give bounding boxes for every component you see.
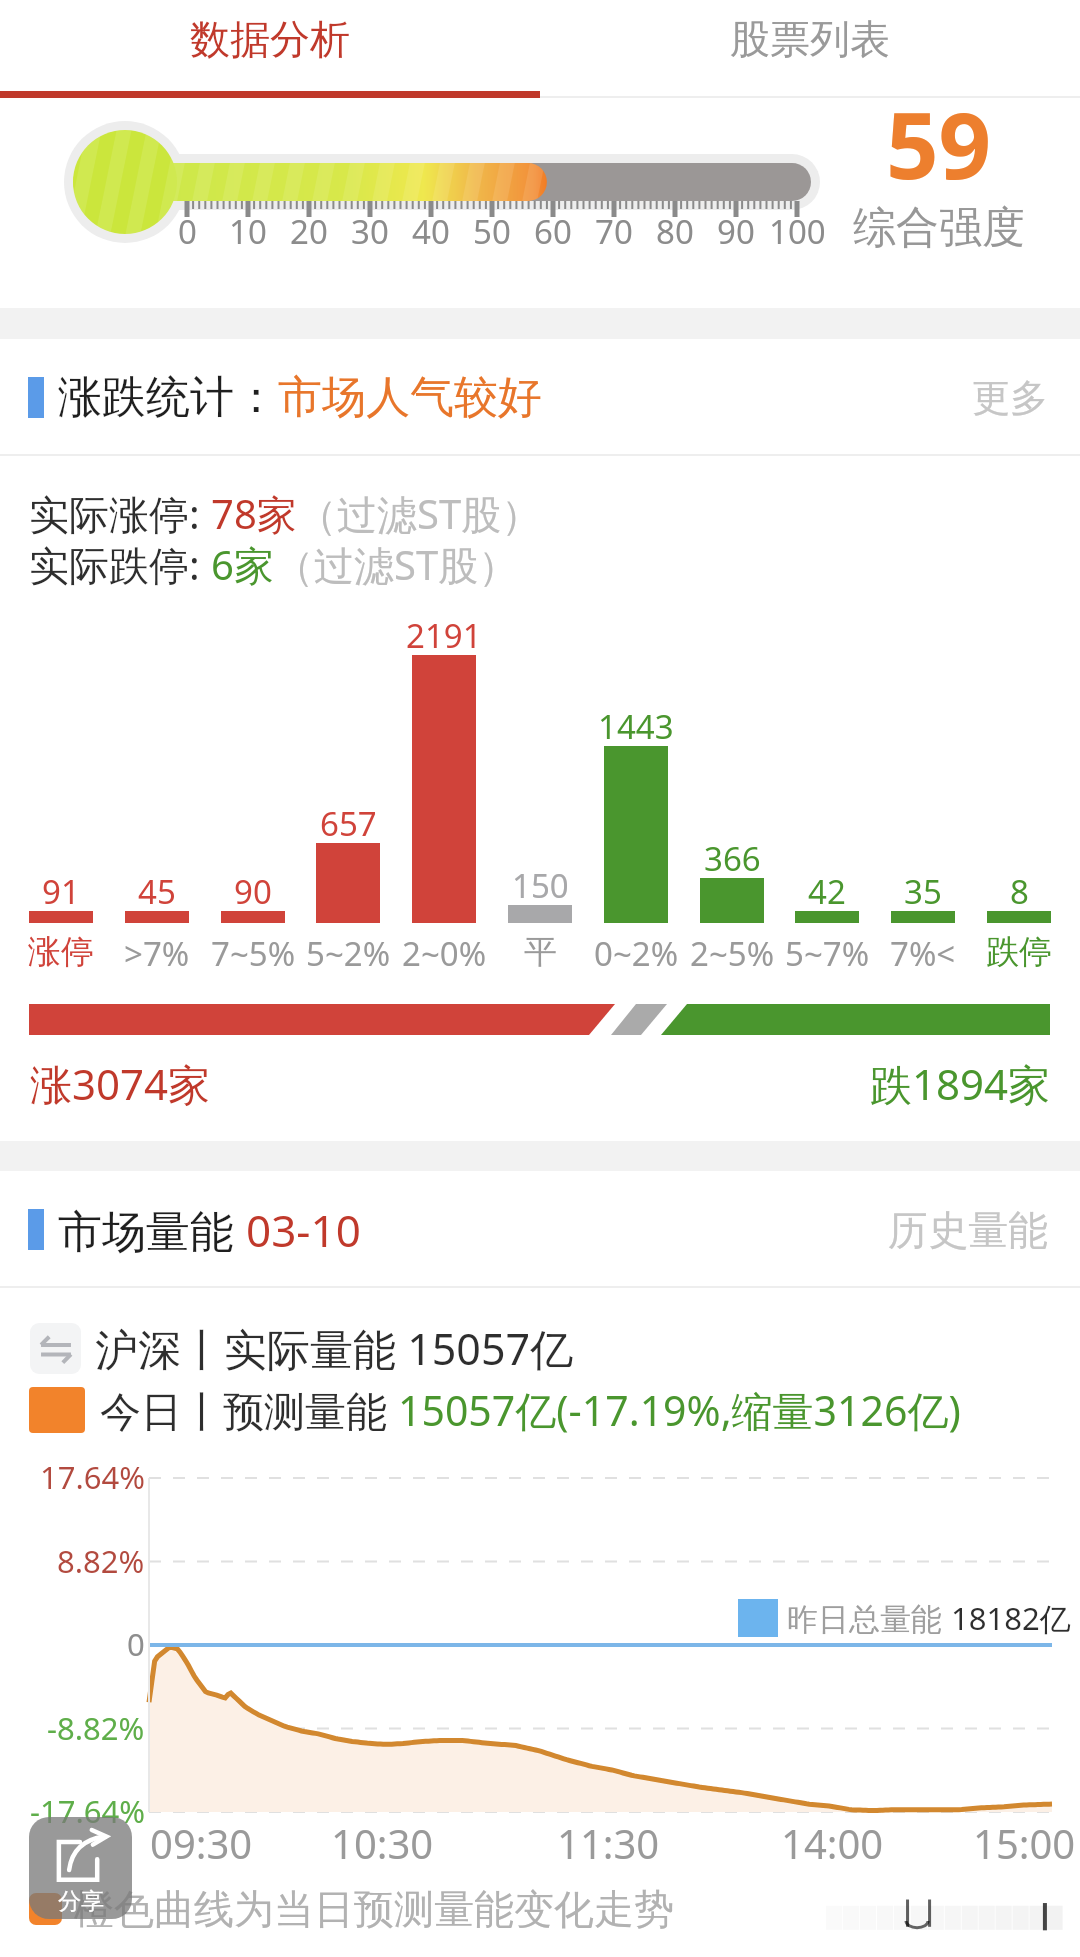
staticText: 2~5% <box>690 931 775 976</box>
staticText: 更多 <box>972 374 1048 422</box>
staticText: 5~7% <box>785 931 870 976</box>
staticText: （过滤ST股） <box>297 486 542 541</box>
staticText: 15057亿(-17.19%,缩量3126亿) <box>398 1382 961 1438</box>
staticText: 平 <box>524 931 557 973</box>
staticText: 实际涨停: <box>29 486 211 541</box>
staticText: 50 <box>473 209 511 254</box>
staticText: （过滤ST股） <box>274 537 519 592</box>
staticText: 历史量能 <box>888 1205 1048 1255</box>
staticText: 78家 <box>211 486 297 541</box>
staticText: 跌停 <box>986 931 1052 973</box>
staticText: 综合强度 <box>853 201 1025 255</box>
staticText: 10:30 <box>331 1816 434 1870</box>
staticText: 09:30 <box>150 1816 253 1870</box>
staticText: 0~2% <box>594 931 679 976</box>
button[interactable]: 分享 <box>29 1817 132 1919</box>
staticText: 7%< <box>890 931 956 976</box>
staticText: 今日丨预测量能 <box>100 1382 398 1438</box>
staticText: 6家 <box>211 537 274 592</box>
staticText: 70 <box>595 209 633 254</box>
staticText: 8 <box>1010 869 1029 914</box>
staticText: 沪深丨实际量能 15057亿 <box>95 1319 574 1378</box>
staticText: 30 <box>351 209 389 254</box>
staticText: 90 <box>234 869 272 914</box>
staticText: 5~2% <box>306 931 391 976</box>
staticText: 59 <box>886 81 992 206</box>
button[interactable]: 数据分析 <box>0 0 540 77</box>
staticText: -8.82% <box>47 1707 145 1749</box>
staticText: 1443 <box>598 704 674 749</box>
staticText: 150 <box>512 863 569 908</box>
staticText: 0 <box>127 1623 145 1665</box>
staticText: 市场量能 <box>58 1200 246 1260</box>
staticText: 2~0% <box>402 931 487 976</box>
staticText: >7% <box>124 931 190 976</box>
staticText: 366 <box>704 836 761 881</box>
staticText: 股票列表 <box>730 14 890 64</box>
staticText: 昨日总量能 <box>787 1597 951 1639</box>
staticText: 15:00 <box>973 1816 1076 1870</box>
staticText: 657 <box>320 801 377 846</box>
staticText: 2191 <box>406 613 482 658</box>
staticText: 涨停 <box>28 931 94 973</box>
staticText: 17.64% <box>40 1456 145 1498</box>
staticText: -17.64% <box>30 1790 145 1832</box>
staticText: 跌1894家 <box>870 1055 1051 1112</box>
staticText: 14:00 <box>781 1816 884 1870</box>
staticText: 35 <box>904 869 942 914</box>
staticText: 实际跌停: <box>29 537 211 592</box>
staticText: 市场人气较好 <box>278 370 542 425</box>
staticText: 8.82% <box>57 1540 145 1582</box>
staticText: 20 <box>290 209 328 254</box>
staticText: 7~5% <box>211 931 296 976</box>
staticText: 涨3074家 <box>30 1055 211 1112</box>
staticText: 80 <box>656 209 694 254</box>
button[interactable]: 更多 <box>972 360 1048 436</box>
staticText: 10 <box>229 209 267 254</box>
staticText: 03-10 <box>246 1200 361 1260</box>
staticText: 0 <box>178 209 197 254</box>
staticText: 11:30 <box>557 1816 660 1870</box>
staticText: 45 <box>138 869 176 914</box>
button[interactable]: 股票列表 <box>540 0 1080 77</box>
button[interactable]: 历史量能 <box>888 1191 1048 1269</box>
staticText: 90 <box>717 209 755 254</box>
staticText: 涨跌统计： <box>58 370 278 425</box>
staticText: 60 <box>534 209 572 254</box>
staticText: 橙色曲线为当日预测量能变化走势 <box>74 1884 674 1934</box>
staticText: 91 <box>42 869 80 914</box>
staticText: 40 <box>412 209 450 254</box>
staticText: 分享 <box>58 1887 104 1916</box>
staticText: 18182亿 <box>951 1597 1071 1639</box>
staticText: 100 <box>769 209 826 254</box>
staticText: 42 <box>808 869 846 914</box>
staticText: 数据分析 <box>190 14 350 64</box>
